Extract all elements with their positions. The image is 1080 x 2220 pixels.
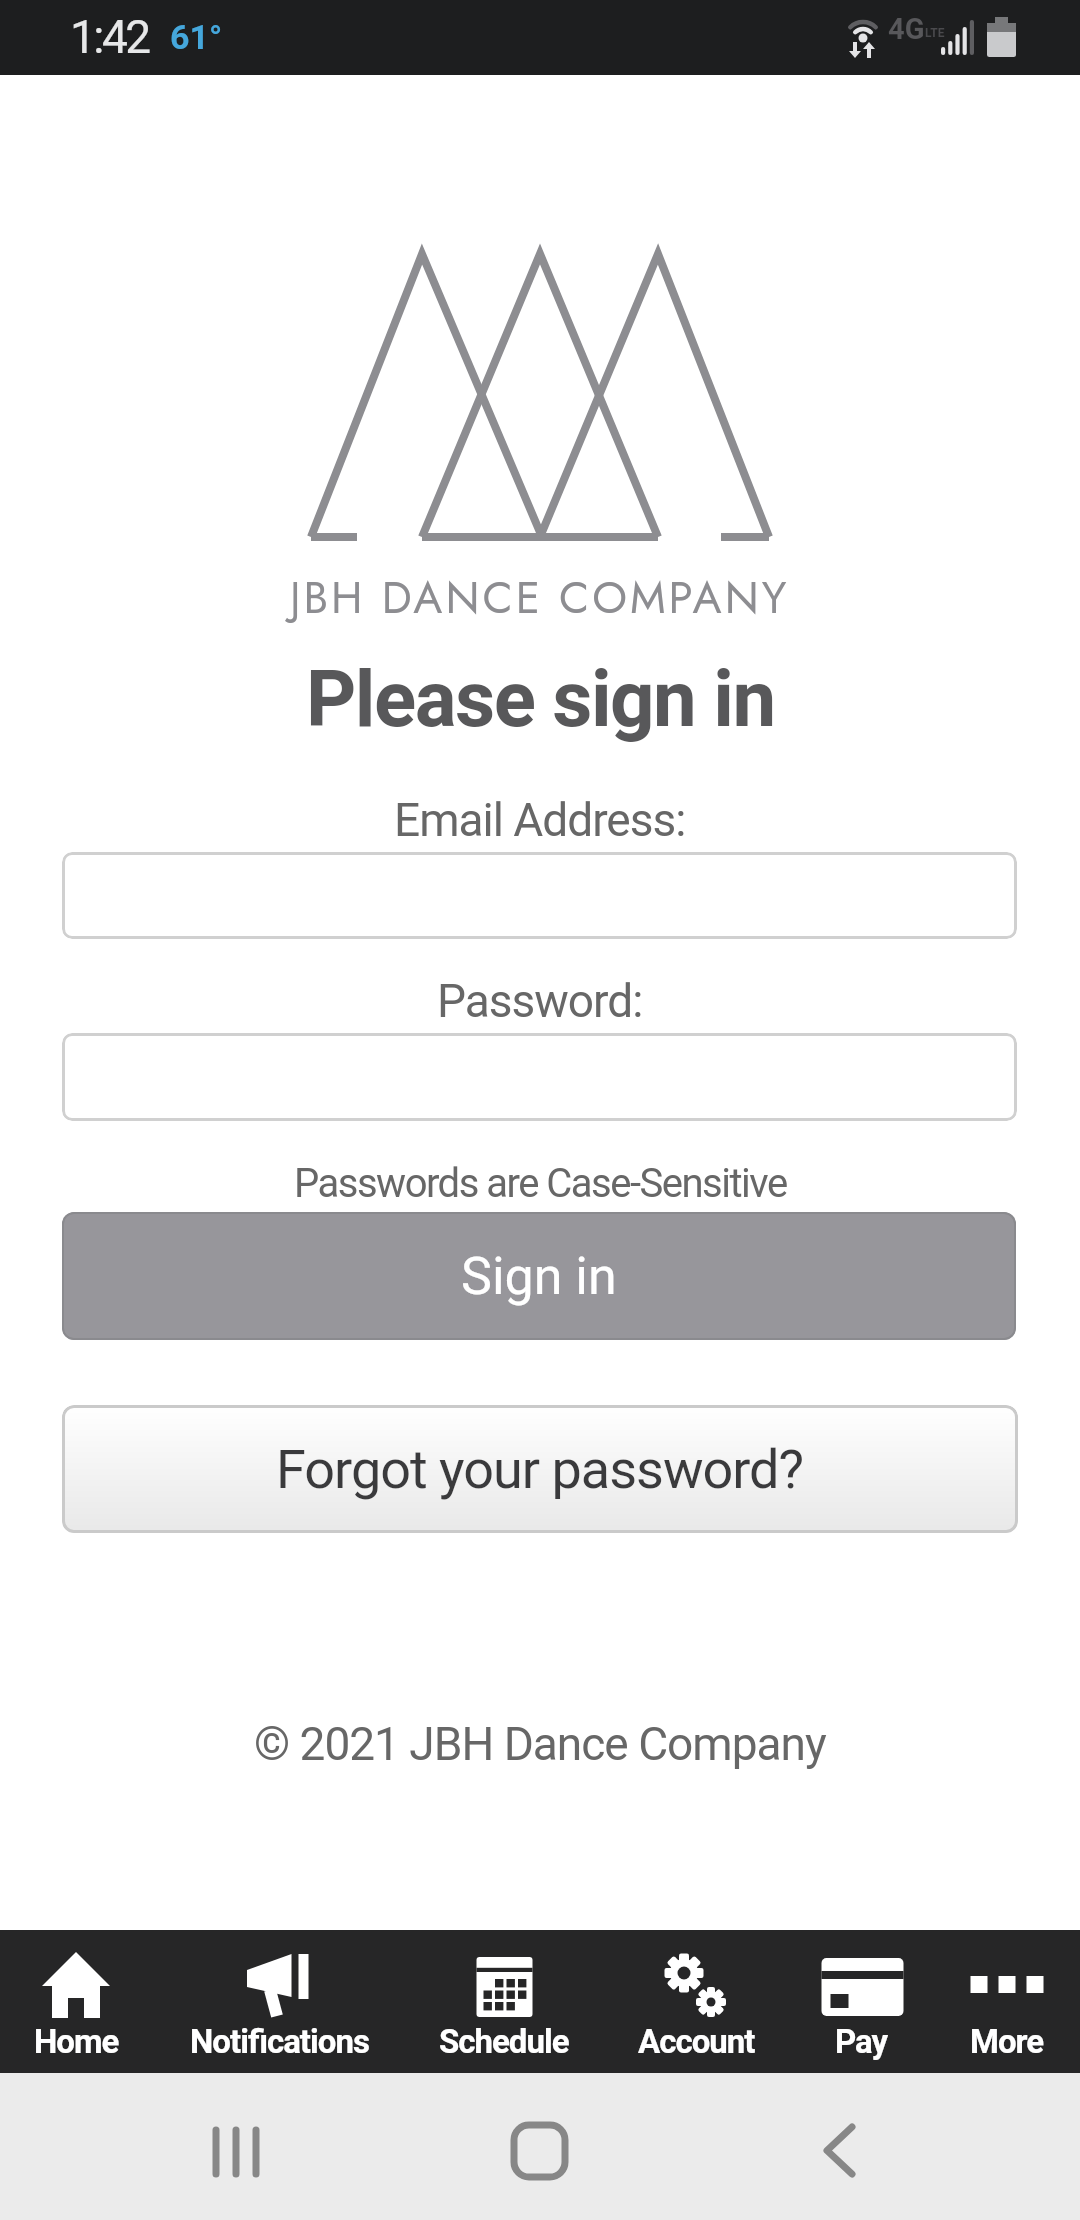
staticText: 4G xyxy=(888,12,925,46)
staticText: 61° xyxy=(170,17,223,57)
staticText: 1:42 xyxy=(70,10,149,64)
button[interactable] xyxy=(62,1033,1017,1121)
staticText: Notifications xyxy=(190,2022,369,2061)
button[interactable]: Sign in xyxy=(62,1212,1016,1340)
staticText: Home xyxy=(34,2022,119,2061)
staticText: Forgot your password? xyxy=(276,1438,804,1501)
button[interactable] xyxy=(180,2103,295,2193)
staticText: JBH DANCE COMPANY xyxy=(290,566,790,630)
staticText: LTE xyxy=(925,26,945,40)
button[interactable]: Home xyxy=(0,1930,152,2073)
button[interactable] xyxy=(62,852,1017,939)
button[interactable]: More xyxy=(933,1930,1080,2073)
button[interactable]: Pay xyxy=(790,1930,933,2073)
button[interactable]: Forgot your password? xyxy=(62,1405,1018,1533)
button[interactable]: Notifications xyxy=(152,1930,406,2073)
button[interactable] xyxy=(790,2103,900,2193)
staticText: Sign in xyxy=(461,1246,617,1307)
button[interactable]: Account xyxy=(602,1930,790,2073)
staticText: Account xyxy=(638,2022,755,2061)
button[interactable] xyxy=(485,2103,595,2193)
staticText: Passwords are Case-Sensitive xyxy=(294,1160,787,1207)
staticText: Pay xyxy=(835,2022,888,2061)
staticText: Please sign in xyxy=(306,654,775,745)
staticText: © 2021 JBH Dance Company xyxy=(254,1717,826,1771)
staticText: Email Address: xyxy=(394,793,686,847)
staticText: Password: xyxy=(437,974,643,1028)
staticText: More xyxy=(970,2022,1044,2061)
button[interactable]: Schedule xyxy=(406,1930,602,2073)
staticText: Schedule xyxy=(439,2022,569,2061)
